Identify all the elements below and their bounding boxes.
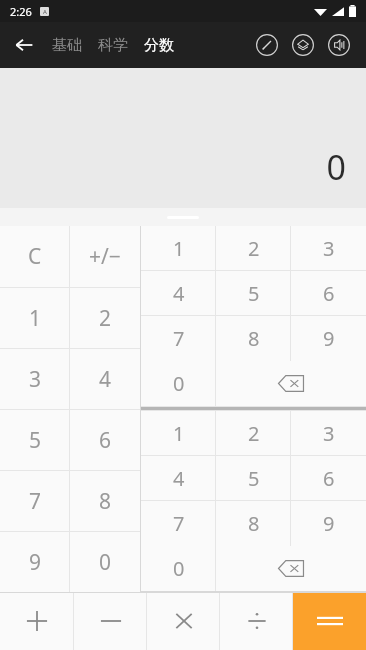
button[interactable]: Plus <box>0 592 74 650</box>
button[interactable]: Backspace <box>216 361 366 406</box>
staticText: 4 <box>99 365 112 394</box>
button[interactable]: 5 <box>216 271 291 315</box>
button[interactable]: 分数 <box>140 30 178 61</box>
staticText: 0 <box>99 548 112 577</box>
button[interactable]: Backspace <box>216 546 366 591</box>
button[interactable]: Equals <box>293 592 366 650</box>
button[interactable]: 1 <box>141 226 216 270</box>
staticText: 5 <box>29 426 42 455</box>
staticText: 科学 <box>98 36 128 55</box>
button[interactable]: Back <box>0 22 48 68</box>
button[interactable]: 8 <box>216 501 291 546</box>
staticText: 分数 <box>144 36 174 55</box>
button[interactable]: Theme <box>288 30 318 60</box>
button[interactable]: 4 <box>141 456 216 500</box>
button[interactable]: 4 <box>141 271 216 315</box>
button[interactable]: 7 <box>0 471 70 531</box>
staticText: 0 <box>326 144 346 190</box>
button[interactable]: 0 <box>70 532 140 592</box>
staticText: 7 <box>173 325 185 352</box>
button[interactable]: 8 <box>70 471 140 531</box>
button[interactable]: 6 <box>291 271 366 315</box>
button[interactable]: 科学 <box>94 30 132 61</box>
button[interactable]: 基础 <box>48 30 86 61</box>
button[interactable]: 2 <box>216 411 291 455</box>
button[interactable]: 2 <box>216 226 291 270</box>
button[interactable]: +/− <box>70 226 140 287</box>
staticText: 2 <box>248 235 260 262</box>
button[interactable]: 1 <box>0 288 70 348</box>
staticText: 6 <box>323 465 335 492</box>
button[interactable]: 6 <box>291 456 366 500</box>
button[interactable]: 7 <box>141 501 216 546</box>
button[interactable]: 6 <box>70 410 140 470</box>
staticText: 0 <box>173 555 185 582</box>
staticText: 4 <box>173 280 185 307</box>
staticText: 7 <box>173 510 185 537</box>
button[interactable]: 0 <box>141 546 216 591</box>
staticText: C <box>28 242 42 271</box>
button[interactable]: 1 <box>141 411 216 455</box>
staticText: 0 <box>173 370 185 397</box>
staticText: 5 <box>248 280 260 307</box>
staticText: 3 <box>323 420 335 447</box>
button[interactable]: Sound <box>324 30 354 60</box>
button[interactable]: 5 <box>216 456 291 500</box>
staticText: 9 <box>323 510 335 537</box>
staticText: 1 <box>173 235 185 262</box>
staticText: 7 <box>29 487 42 516</box>
button[interactable]: Divide <box>220 592 293 650</box>
button[interactable]: 3 <box>291 226 366 270</box>
button[interactable]: C <box>0 226 70 287</box>
button[interactable]: 9 <box>291 316 366 361</box>
staticText: 9 <box>29 548 42 577</box>
staticText: 8 <box>248 510 260 537</box>
staticText: +/− <box>89 242 121 271</box>
staticText: 2 <box>248 420 260 447</box>
staticText: 2:26 <box>10 4 32 19</box>
staticText: 5 <box>248 465 260 492</box>
button[interactable]: 2 <box>70 288 140 348</box>
button[interactable]: 4 <box>70 349 140 409</box>
staticText: 8 <box>248 325 260 352</box>
button[interactable]: 3 <box>0 349 70 409</box>
staticText: A <box>43 8 47 16</box>
staticText: 4 <box>173 465 185 492</box>
button[interactable]: Multiply <box>147 592 220 650</box>
staticText: 3 <box>323 235 335 262</box>
staticText: 9 <box>323 325 335 352</box>
staticText: 6 <box>323 280 335 307</box>
staticText: 1 <box>29 304 42 333</box>
button[interactable]: Edit <box>252 30 282 60</box>
button[interactable]: 0 <box>141 361 216 406</box>
button[interactable]: 8 <box>216 316 291 361</box>
staticText: 1 <box>173 420 185 447</box>
button[interactable]: 7 <box>141 316 216 361</box>
button[interactable]: Minus <box>74 592 147 650</box>
button[interactable]: 9 <box>291 501 366 546</box>
staticText: 6 <box>99 426 112 455</box>
staticText: 3 <box>29 365 42 394</box>
staticText: 8 <box>99 487 112 516</box>
button[interactable]: 5 <box>0 410 70 470</box>
button[interactable]: 3 <box>291 411 366 455</box>
staticText: 2 <box>99 304 112 333</box>
staticText: 基础 <box>52 36 82 55</box>
button[interactable]: 9 <box>0 532 70 592</box>
